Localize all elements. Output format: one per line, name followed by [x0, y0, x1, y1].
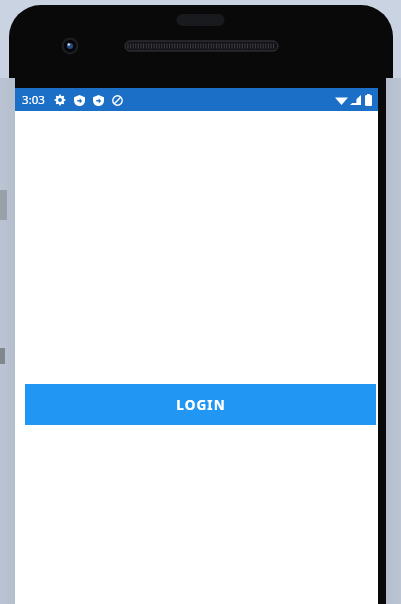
other: Mobile signal — [350, 95, 361, 105]
other: Security — [93, 95, 104, 106]
other: Wi-Fi — [335, 95, 348, 105]
other: Do not disturb — [112, 95, 123, 106]
button[interactable]: LOGIN — [25, 384, 376, 425]
other: Security — [74, 95, 85, 106]
other: Battery — [365, 94, 372, 106]
staticText: LOGIN — [176, 396, 226, 414]
other: Settings — [54, 94, 66, 106]
staticText: 3:03 — [22, 92, 45, 108]
